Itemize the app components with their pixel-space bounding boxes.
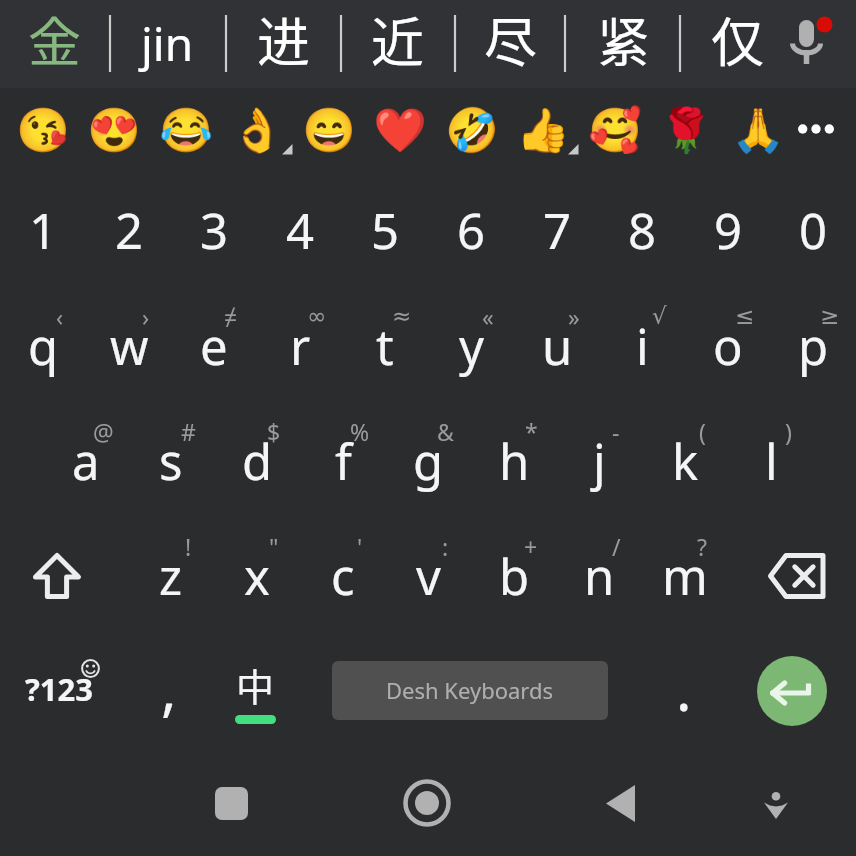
staticText: $	[267, 416, 281, 446]
staticText: z	[159, 543, 183, 610]
button[interactable]: 0	[770, 176, 856, 284]
button[interactable]: f	[300, 404, 386, 518]
button[interactable]: n	[556, 519, 642, 633]
staticText: n	[584, 543, 615, 610]
button[interactable]: Symbols	[4, 645, 116, 733]
button[interactable]: 🌹	[650, 88, 721, 170]
button[interactable]: 7	[514, 176, 600, 284]
staticText: f	[335, 428, 352, 495]
button[interactable]: 😘	[7, 88, 78, 170]
button[interactable]: 🤣	[436, 88, 507, 170]
button[interactable]: y	[428, 289, 514, 403]
staticText: x	[244, 543, 270, 610]
staticText: 7	[543, 197, 572, 264]
staticText: 🤣	[445, 105, 499, 155]
staticText: e	[200, 313, 228, 380]
button[interactable]: Backspace	[768, 553, 826, 599]
button[interactable]: 4	[257, 176, 343, 284]
button[interactable]: 🙏	[722, 88, 793, 170]
button[interactable]: a	[43, 404, 129, 518]
button[interactable]: jin	[115, 0, 219, 88]
staticText: (	[699, 416, 706, 446]
button[interactable]: j	[556, 404, 642, 518]
button[interactable]: v	[385, 519, 471, 633]
staticText: +	[524, 531, 538, 561]
button[interactable]: 😄	[293, 88, 364, 170]
button[interactable]: m	[642, 519, 728, 633]
button[interactable]: o	[685, 289, 771, 403]
button[interactable]: Home	[387, 763, 467, 843]
button[interactable]: i	[599, 289, 685, 403]
button[interactable]: 仅	[685, 0, 789, 88]
staticText: m	[662, 543, 708, 610]
button[interactable]: 8	[599, 176, 685, 284]
button[interactable]: s	[128, 404, 214, 518]
button[interactable]: 👌	[221, 88, 292, 170]
staticText: 😄	[302, 105, 356, 155]
button[interactable]: t	[342, 289, 428, 403]
staticText: ∞	[307, 303, 327, 330]
button[interactable]: x	[214, 519, 300, 633]
staticText: ?123	[25, 668, 93, 710]
button[interactable]: 近	[345, 0, 449, 88]
staticText: »	[568, 301, 580, 331]
button[interactable]: c	[300, 519, 386, 633]
button[interactable]: p	[770, 289, 856, 403]
button[interactable]: Hide keyboard	[736, 765, 816, 845]
button[interactable]: 紧	[571, 0, 675, 88]
button[interactable]: 2	[86, 176, 172, 284]
button[interactable]: ❤️	[364, 88, 435, 170]
button[interactable]: 👍	[507, 88, 578, 170]
button[interactable]: 😍	[78, 88, 149, 170]
staticText: 9	[714, 197, 743, 264]
button[interactable]: Voice input	[772, 0, 856, 88]
button[interactable]: d	[214, 404, 300, 518]
staticText: 0	[799, 197, 828, 264]
button[interactable]: r	[257, 289, 343, 403]
staticText: Desh Keyboards	[386, 675, 554, 705]
button[interactable]: 3	[171, 176, 257, 284]
staticText: h	[499, 428, 530, 495]
button[interactable]: Recents	[191, 763, 271, 843]
button[interactable]: 😂	[150, 88, 221, 170]
staticText: 👌	[230, 105, 284, 155]
staticText: @	[93, 416, 114, 446]
button[interactable]: 6	[428, 176, 514, 284]
staticText: 2	[115, 197, 144, 264]
staticText: 进	[257, 1, 310, 78]
button[interactable]: Shift	[14, 553, 99, 599]
button[interactable]: 尽	[458, 0, 562, 88]
button[interactable]: b	[471, 519, 557, 633]
button[interactable]: l	[728, 404, 814, 518]
button[interactable]: e	[171, 289, 257, 403]
staticText: y	[459, 313, 484, 380]
staticText: ,	[161, 648, 177, 727]
button[interactable]: z	[128, 519, 214, 633]
button[interactable]: k	[642, 404, 728, 518]
button[interactable]: Desh Keyboards	[332, 661, 608, 720]
staticText: 3	[200, 197, 229, 264]
button[interactable]: 金	[2, 0, 106, 88]
button[interactable]: 1	[0, 176, 86, 284]
staticText: -	[612, 416, 620, 446]
button[interactable]: 5	[342, 176, 428, 284]
button[interactable]: u	[514, 289, 600, 403]
button[interactable]: More emoji	[781, 88, 851, 170]
button[interactable]: 进	[231, 0, 335, 88]
button[interactable]: h	[471, 404, 557, 518]
button[interactable]: w	[86, 289, 172, 403]
staticText: 5	[371, 197, 400, 264]
staticText: ❤️	[373, 105, 427, 155]
button[interactable]: .	[644, 638, 724, 738]
button[interactable]: Enter	[757, 656, 827, 726]
button[interactable]: Back	[580, 763, 660, 843]
button[interactable]: q	[0, 289, 86, 403]
button[interactable]: 9	[685, 176, 771, 284]
button[interactable]: Switch language	[215, 634, 295, 738]
button[interactable]: ,	[129, 637, 209, 737]
staticText: 中	[236, 657, 275, 712]
staticText: #	[181, 416, 196, 446]
button[interactable]: g	[385, 404, 471, 518]
button[interactable]: 🥰	[579, 88, 650, 170]
staticText: ?	[697, 531, 707, 561]
